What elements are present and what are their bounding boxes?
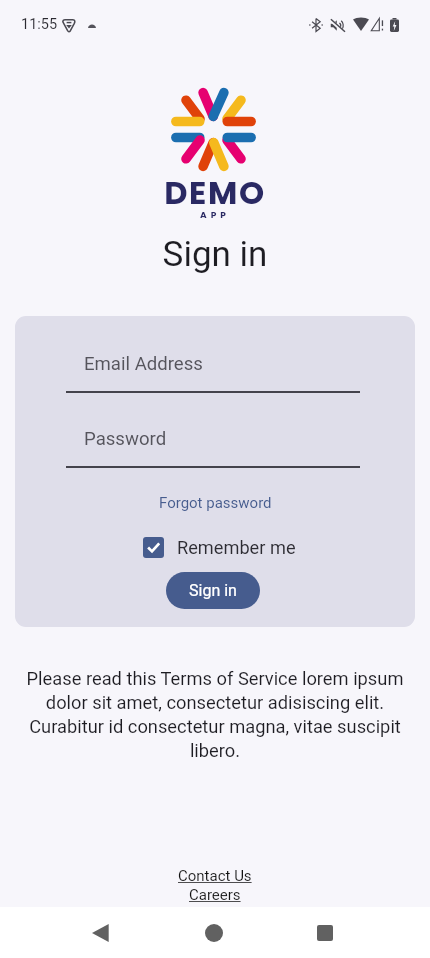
button[interactable]: Careers [189, 886, 241, 904]
button[interactable]: Remember me [143, 537, 296, 558]
button[interactable]: Back [74, 913, 126, 953]
staticText: Email Address [84, 353, 203, 375]
button[interactable]: Contact Us [178, 867, 252, 885]
button[interactable]: Forgot password [159, 494, 272, 512]
staticText: DEMO [0, 170, 430, 215]
staticText: Please read this Terms of Service lorem … [18, 668, 412, 761]
staticText: APP [0, 209, 430, 222]
button[interactable]: Home [188, 913, 240, 953]
staticText: Sign in [189, 581, 237, 600]
staticText: Password [84, 428, 167, 450]
staticText: Sign in [0, 234, 430, 275]
button[interactable]: Recent apps [299, 913, 351, 953]
staticText: 11:55 [21, 16, 58, 33]
button[interactable]: Sign in [166, 572, 260, 609]
staticText: Remember me [177, 537, 296, 558]
